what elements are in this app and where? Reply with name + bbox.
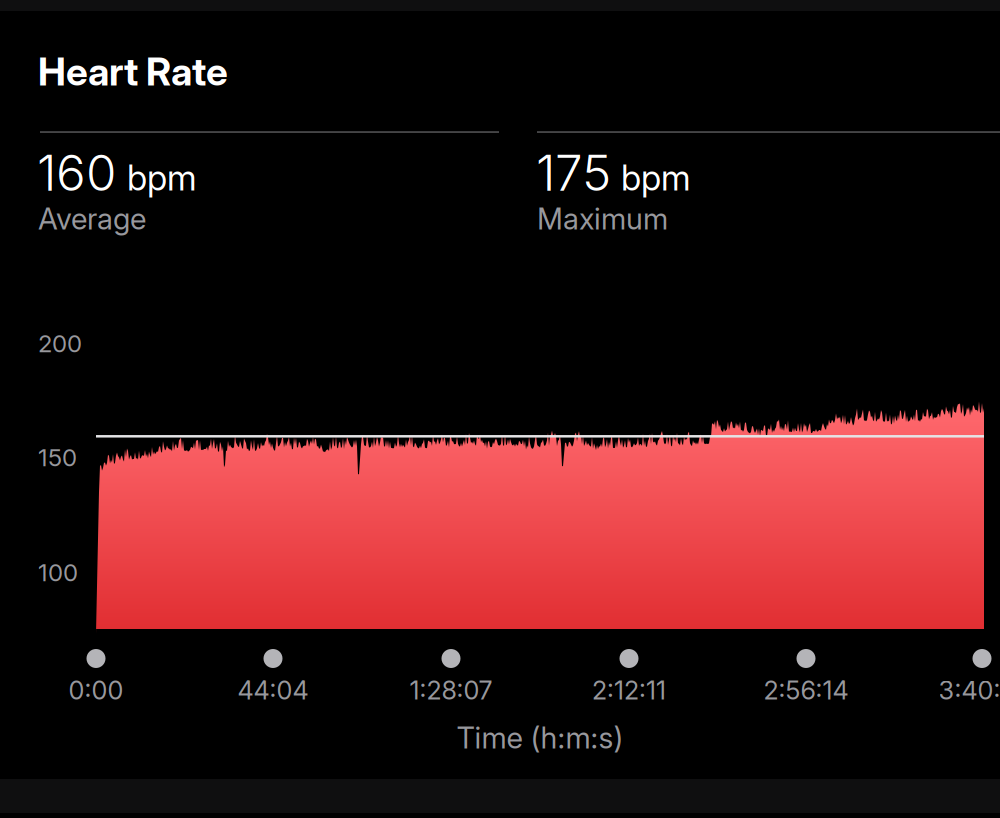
staticText: 2:12:11 bbox=[592, 675, 666, 706]
staticText: 100 bbox=[38, 558, 78, 587]
staticText: Maximum bbox=[537, 201, 668, 236]
staticText: 150 bbox=[38, 443, 77, 472]
staticText: 44:04 bbox=[237, 675, 308, 706]
staticText: 1:28:07 bbox=[409, 675, 492, 706]
staticText: 2:56:14 bbox=[763, 675, 848, 706]
staticText: bpm bbox=[127, 157, 197, 199]
staticText: Average bbox=[38, 201, 146, 236]
staticText: bpm bbox=[621, 157, 691, 199]
staticText: 3:40:18 bbox=[938, 675, 1000, 706]
staticText: Heart Rate bbox=[38, 48, 228, 95]
staticText: 175 bbox=[536, 143, 611, 203]
staticText: 200 bbox=[38, 329, 82, 358]
staticText: 0:00 bbox=[68, 675, 123, 706]
staticText: Time (h:m:s) bbox=[456, 720, 623, 755]
staticText: 160 bbox=[37, 143, 116, 203]
